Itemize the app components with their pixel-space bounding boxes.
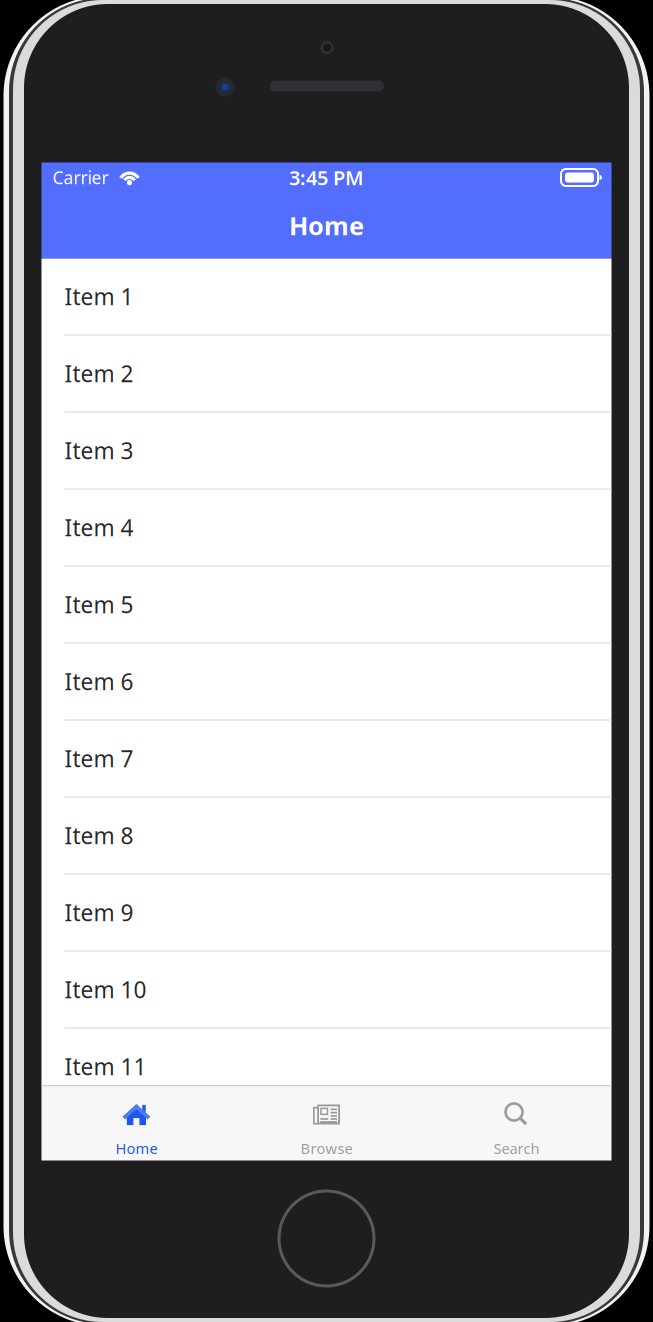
staticText: Item 3: [64, 435, 133, 465]
staticText: Item 5: [64, 589, 133, 619]
button[interactable]: Item 9: [41, 874, 611, 951]
button[interactable]: Browse: [231, 1086, 421, 1160]
button[interactable]: Item 5: [41, 566, 611, 643]
button[interactable]: Item 8: [41, 797, 611, 874]
button[interactable]: Item 7: [41, 720, 611, 797]
button[interactable]: Item 1: [41, 258, 611, 335]
staticText: 3:45 PM: [289, 164, 364, 191]
staticText: Item 6: [64, 666, 133, 696]
staticText: Item 9: [64, 897, 133, 927]
staticText: Search: [493, 1138, 539, 1158]
staticText: Item 7: [64, 743, 133, 773]
staticText: Item 1: [64, 281, 133, 311]
staticText: Browse: [300, 1138, 352, 1158]
button[interactable]: Item 10: [41, 951, 611, 1028]
button[interactable]: Search: [421, 1086, 611, 1160]
button[interactable]: Item 2: [41, 335, 611, 412]
button[interactable]: Item 12: [41, 1105, 611, 1182]
staticText: Home: [289, 209, 364, 242]
staticText: Item 10: [64, 974, 146, 1004]
staticText: Item 11: [64, 1051, 146, 1081]
staticText: Item 12: [64, 1128, 146, 1158]
button[interactable]: Home button: [279, 1160, 374, 1286]
button[interactable]: Item 4: [41, 489, 611, 566]
staticText: Item 8: [64, 820, 133, 850]
staticText: Item 4: [64, 512, 133, 542]
staticText: Home: [115, 1138, 157, 1158]
button[interactable]: Item 3: [41, 412, 611, 489]
staticText: Item 2: [64, 358, 133, 388]
button[interactable]: Item 6: [41, 643, 611, 720]
button[interactable]: Home: [41, 1086, 231, 1160]
button[interactable]: Item 11: [41, 1028, 611, 1105]
staticText: Carrier: [52, 166, 108, 189]
